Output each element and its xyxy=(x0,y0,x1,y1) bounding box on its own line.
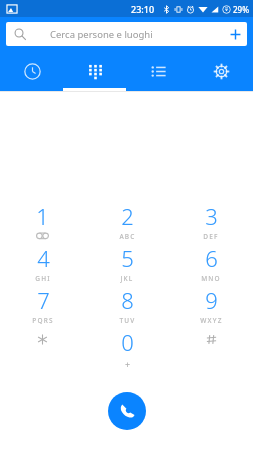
staticText: 4 xyxy=(37,243,50,273)
staticText: TUV xyxy=(119,316,136,325)
staticText: PQRS xyxy=(32,316,54,325)
button[interactable]: Chiama xyxy=(108,392,146,430)
staticText: WXYZ xyxy=(200,316,223,325)
staticText: JKL xyxy=(120,274,134,283)
staticText: MNO xyxy=(201,274,221,283)
staticText: 23:10 xyxy=(131,3,155,15)
button[interactable]: Aggiungi contatto xyxy=(223,22,247,46)
button[interactable]: 9 xyxy=(169,284,253,326)
staticText: 6 xyxy=(205,243,218,273)
staticText: 9 xyxy=(205,285,218,315)
button[interactable]: Recenti xyxy=(0,51,64,91)
staticText: Cerca persone e luoghi xyxy=(50,28,153,41)
staticText: GHI xyxy=(35,274,51,283)
button[interactable]: 6 xyxy=(169,242,253,284)
staticText: 5 xyxy=(121,243,134,273)
button[interactable]: Cerca persone e luoghi xyxy=(6,22,247,46)
staticText: 3 xyxy=(205,201,218,231)
staticText: 8 xyxy=(121,285,134,315)
staticText: 7 xyxy=(37,285,50,315)
button[interactable]: 4 xyxy=(0,242,85,284)
button[interactable]: 8 xyxy=(85,284,169,326)
button[interactable]: Contatti xyxy=(127,51,190,91)
button[interactable]: Tastierino xyxy=(64,51,127,91)
staticText: + xyxy=(125,358,131,368)
staticText: DEF xyxy=(203,232,219,241)
button[interactable]: 5 xyxy=(85,242,169,284)
button[interactable] xyxy=(169,326,253,368)
staticText: 0 xyxy=(121,327,134,357)
staticText: 2 xyxy=(121,201,134,231)
button[interactable] xyxy=(0,326,85,368)
button[interactable]: 2 xyxy=(85,200,169,242)
button[interactable]: 0 xyxy=(85,326,169,368)
button[interactable]: Impostazioni xyxy=(190,51,253,91)
staticText: 29% xyxy=(233,4,249,15)
staticText: 1 xyxy=(36,201,49,231)
staticText: ABC xyxy=(119,232,136,241)
button[interactable]: 3 xyxy=(169,200,253,242)
button[interactable]: 1 xyxy=(0,200,85,242)
button[interactable]: 7 xyxy=(0,284,85,326)
